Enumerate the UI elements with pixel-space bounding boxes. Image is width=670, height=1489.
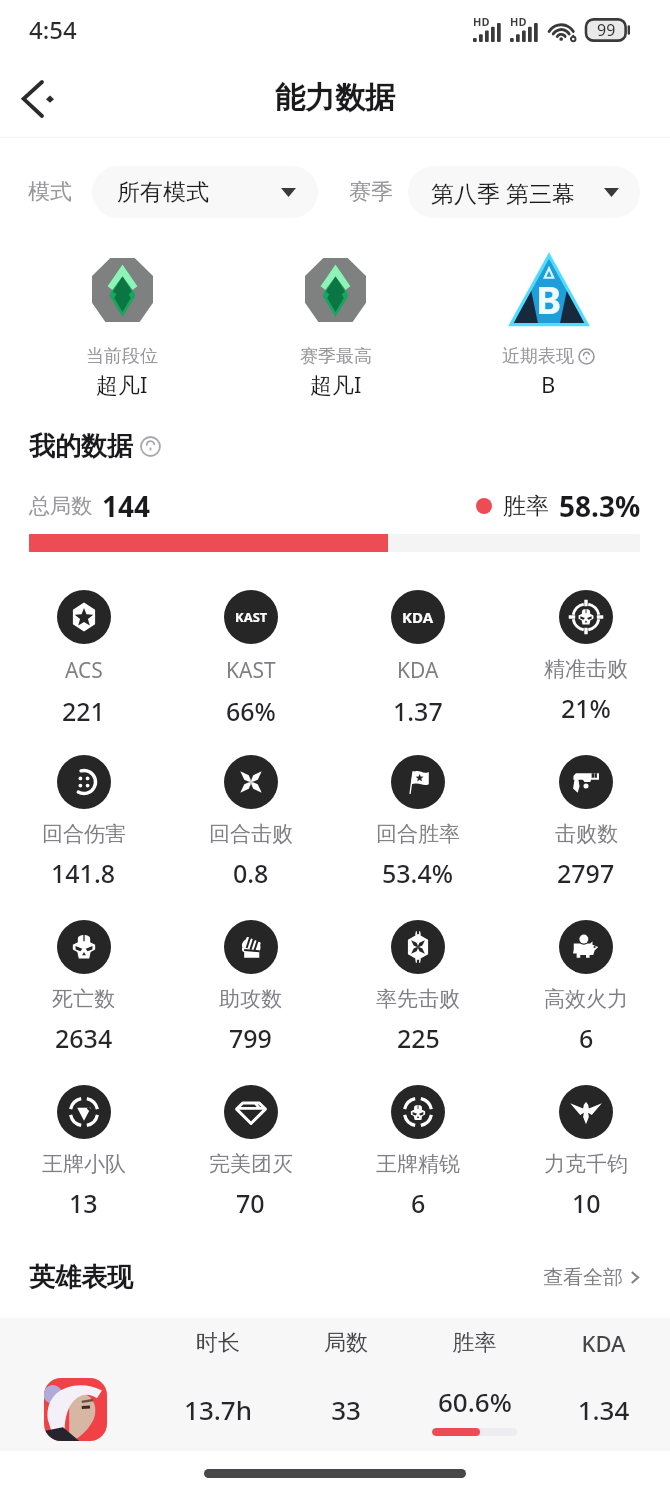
staticText: 4:54 xyxy=(29,13,77,46)
staticText: 221 xyxy=(62,694,105,728)
staticText: 超凡I xyxy=(96,369,148,399)
staticText: 1.34 xyxy=(539,1392,668,1427)
staticText: 66% xyxy=(226,694,276,728)
staticText: 53.4% xyxy=(382,856,454,890)
staticText: 近期表现 xyxy=(502,345,574,368)
staticText: 率先击败 xyxy=(376,986,460,1012)
staticText: 当前段位 xyxy=(86,345,158,368)
staticText: 21% xyxy=(561,691,611,725)
staticText: 模式 xyxy=(28,178,72,206)
button[interactable]: Back xyxy=(6,66,70,130)
staticText: 6 xyxy=(411,1186,426,1220)
staticText: 王牌精锐 xyxy=(376,1151,460,1177)
staticText: KAST xyxy=(226,656,276,685)
staticText: 58.3% xyxy=(559,487,641,525)
staticText: HD xyxy=(510,14,527,29)
staticText: 能力数据 xyxy=(275,79,395,117)
staticText: 60.6% xyxy=(438,1384,512,1419)
button[interactable]: 13.7h xyxy=(0,1368,670,1451)
staticText: 胜率 xyxy=(503,492,549,521)
staticText: 王牌小队 xyxy=(42,1151,126,1177)
staticText: 回合击败 xyxy=(209,821,293,847)
staticText: 总局数 xyxy=(29,493,92,519)
staticText: 回合胜率 xyxy=(376,821,460,847)
button[interactable]: 完美团灭 xyxy=(167,1085,334,1220)
staticText: ACS xyxy=(65,656,103,685)
staticText: B xyxy=(541,369,556,399)
staticText: KDA xyxy=(402,607,434,627)
staticText: 完美团灭 xyxy=(209,1151,293,1177)
button[interactable]: 击败数 xyxy=(502,755,670,890)
staticText: 144 xyxy=(102,487,151,525)
staticText: 1.37 xyxy=(393,694,443,728)
staticText: 精准击败 xyxy=(544,656,628,682)
staticText: 赛季 xyxy=(349,178,393,206)
staticText: 赛季最高 xyxy=(300,345,372,368)
staticText: 70 xyxy=(236,1186,265,1220)
button[interactable]: 高效火力 xyxy=(502,920,670,1055)
staticText: KDA xyxy=(397,656,439,685)
button[interactable]: 王牌精锐 xyxy=(334,1085,502,1220)
staticText: 高效火力 xyxy=(544,986,628,1012)
staticText: 击败数 xyxy=(555,821,618,847)
staticText: 99 xyxy=(597,19,616,41)
staticText: 英雄表现 xyxy=(29,1261,133,1294)
staticText: 时长 xyxy=(154,1329,282,1357)
staticText: 局数 xyxy=(282,1329,410,1357)
staticText: 死亡数 xyxy=(52,986,115,1012)
staticText: 141.8 xyxy=(51,856,116,890)
staticText: 第八季 第三幕 xyxy=(431,177,575,208)
button[interactable]: 回合伤害 xyxy=(0,755,167,890)
button[interactable]: 所有模式 xyxy=(92,166,318,218)
button[interactable]: 精准击败 xyxy=(502,590,670,725)
button[interactable]: 王牌小队 xyxy=(0,1085,167,1220)
button[interactable]: 力克千钧 xyxy=(502,1085,670,1220)
staticText: 13 xyxy=(69,1186,98,1220)
staticText: 查看全部 xyxy=(543,1265,623,1290)
staticText: 0.8 xyxy=(233,856,269,890)
staticText: 13.7h xyxy=(154,1392,282,1427)
staticText: KDA xyxy=(539,1328,668,1358)
button[interactable]: 回合击败 xyxy=(167,755,334,890)
staticText: 所有模式 xyxy=(117,178,209,207)
staticText: 回合伤害 xyxy=(42,821,126,847)
button[interactable]: 率先击败 xyxy=(334,920,502,1055)
button[interactable]: 回合胜率 xyxy=(334,755,502,890)
button[interactable]: 查看全部 xyxy=(539,1261,646,1294)
button[interactable]: KDA xyxy=(334,590,502,728)
staticText: B xyxy=(536,273,562,325)
staticText: 胜率 xyxy=(410,1329,539,1357)
staticText: 225 xyxy=(397,1021,440,1055)
staticText: 6 xyxy=(579,1021,594,1055)
button[interactable]: KAST xyxy=(167,590,334,728)
staticText: HD xyxy=(473,14,490,29)
staticText: 2634 xyxy=(55,1021,113,1055)
staticText: 799 xyxy=(229,1021,272,1055)
button[interactable]: 死亡数 xyxy=(0,920,167,1055)
staticText: 10 xyxy=(572,1186,601,1220)
staticText: KAST xyxy=(235,608,268,626)
staticText: 超凡I xyxy=(310,369,362,399)
button[interactable]: 第八季 第三幕 xyxy=(408,166,640,218)
staticText: 我的数据 xyxy=(29,430,133,463)
staticText: 力克千钧 xyxy=(544,1151,628,1177)
button[interactable]: 助攻数 xyxy=(167,920,334,1055)
staticText: 2797 xyxy=(557,856,615,890)
staticText: 33 xyxy=(282,1392,410,1427)
button[interactable]: ACS xyxy=(0,590,167,728)
staticText: 助攻数 xyxy=(219,986,282,1012)
